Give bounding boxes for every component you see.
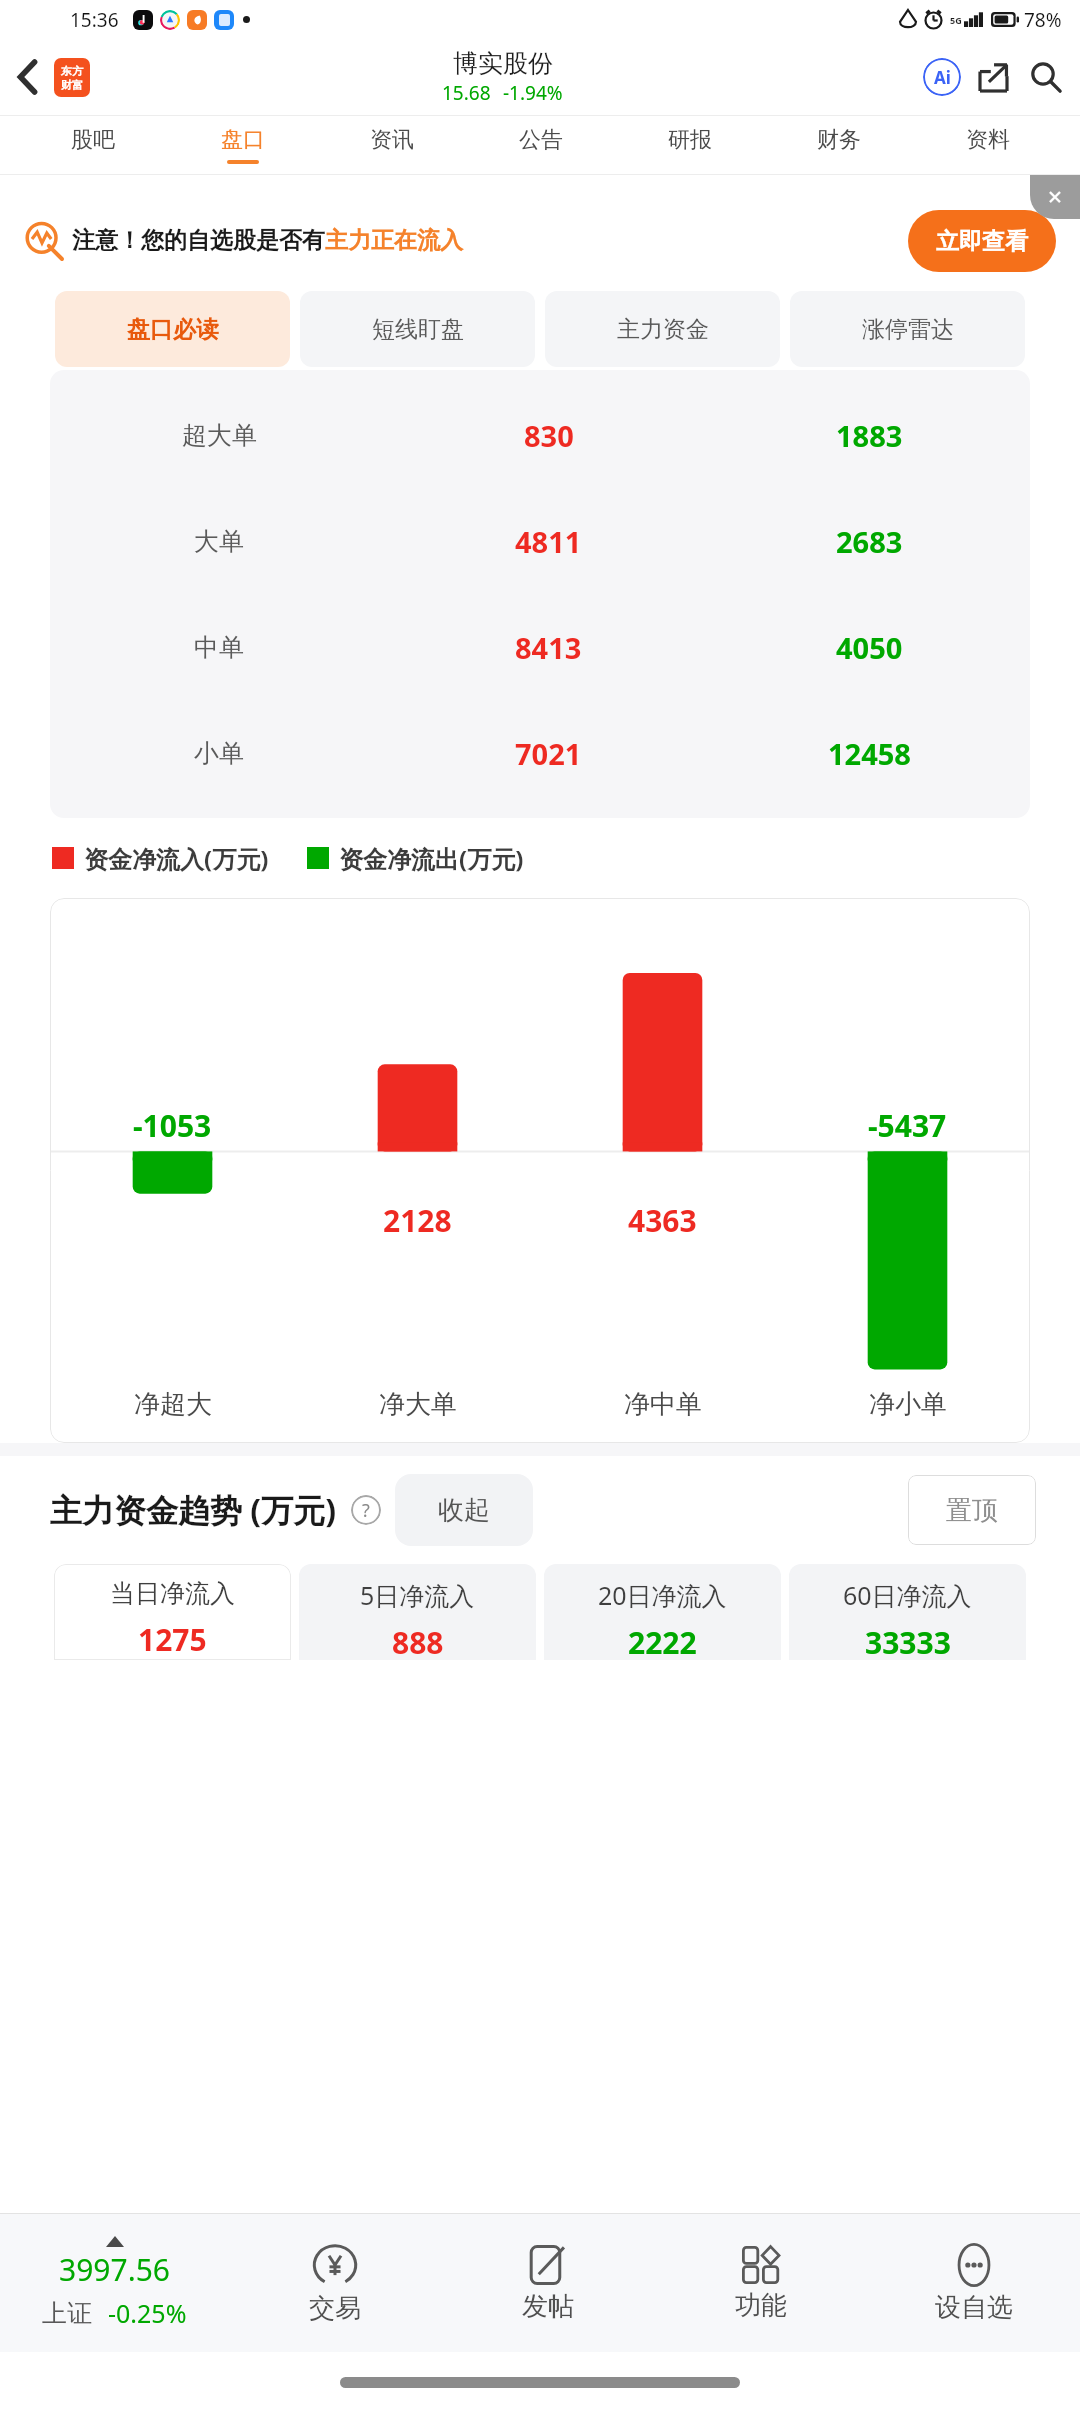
button[interactable]: 涨停雷达	[790, 291, 1025, 367]
staticText: ✕	[1047, 186, 1063, 208]
staticText: 注意！您的自选股是否有	[72, 226, 325, 255]
button[interactable]: 公告	[466, 116, 615, 174]
staticText: 2222	[628, 1622, 697, 1660]
staticText: 涨停雷达	[862, 315, 954, 344]
staticText: 收起	[438, 1494, 490, 1527]
staticText: 1275	[138, 1619, 207, 1660]
staticText: -5437	[868, 1105, 947, 1146]
staticText: -1.94%	[503, 80, 563, 106]
staticText: 股吧	[71, 126, 115, 154]
button[interactable]: 研报	[615, 116, 764, 174]
staticText: 33333	[865, 1622, 951, 1660]
staticText: ?	[362, 1498, 370, 1523]
staticText: 2128	[383, 1200, 452, 1241]
button[interactable]: 注意！您的自选股是否有	[24, 193, 1056, 288]
staticText: 资讯	[370, 126, 414, 154]
staticText: 置顶	[946, 1494, 998, 1527]
button[interactable]: Back	[0, 39, 54, 115]
staticText: 净大单	[379, 1388, 457, 1421]
button[interactable]: Help	[349, 1493, 383, 1527]
button[interactable]: 功能	[654, 2214, 867, 2352]
staticText: 4050	[836, 628, 903, 667]
staticText: 15:36	[70, 7, 119, 33]
staticText: Ai	[934, 66, 951, 89]
staticText: 盘口必读	[127, 315, 219, 344]
staticText: 大单	[194, 526, 244, 557]
button[interactable]: 20日净流入	[544, 1564, 781, 1660]
staticText: 财富	[61, 78, 83, 92]
button[interactable]: Close	[1030, 175, 1080, 219]
staticText: 主力资金趋势 (万元)	[50, 1488, 337, 1532]
button[interactable]: 盘口必读	[55, 291, 290, 367]
button[interactable]: 置顶	[908, 1475, 1036, 1545]
button[interactable]: 盘口	[168, 116, 317, 174]
staticText: 功能	[735, 2289, 787, 2322]
button[interactable]: 3997.56	[0, 2214, 229, 2352]
staticText: -0.25%	[108, 2296, 187, 2330]
staticText: 净超大	[134, 1388, 212, 1421]
staticText: 净小单	[869, 1388, 947, 1421]
button[interactable]: 收起	[395, 1474, 533, 1546]
staticText: 60日净流入	[843, 1578, 972, 1612]
button[interactable]: AI assistant	[916, 51, 968, 103]
staticText: 中单	[194, 632, 244, 663]
staticText: 小单	[194, 738, 244, 769]
staticText: 20日净流入	[598, 1578, 727, 1612]
staticText: 发帖	[522, 2290, 574, 2323]
button[interactable]: 主力资金	[545, 291, 780, 367]
button[interactable]: 5日净流入	[299, 1564, 536, 1660]
button[interactable]: 资讯	[317, 116, 466, 174]
staticText: 3997.56	[59, 2249, 170, 2290]
staticText: 4811	[515, 522, 582, 561]
button[interactable]: 短线盯盘	[300, 291, 535, 367]
button[interactable]: 交易	[229, 2214, 441, 2352]
staticText: 短线盯盘	[372, 315, 464, 344]
staticText: 立即查看	[936, 227, 1028, 256]
button[interactable]: 设自选	[867, 2214, 1080, 2352]
staticText: 7021	[515, 734, 582, 773]
staticText: 资金净流出(万元)	[339, 842, 524, 875]
button[interactable]: 60日净流入	[789, 1564, 1026, 1660]
staticText: 研报	[668, 126, 712, 154]
staticText: 2683	[836, 522, 903, 561]
staticText: 上证	[42, 2298, 92, 2329]
button[interactable]: East Money	[54, 58, 90, 97]
staticText: 888	[392, 1622, 444, 1660]
button[interactable]: 资料	[913, 116, 1062, 174]
button[interactable]: 立即查看	[908, 210, 1056, 272]
staticText: 1883	[836, 416, 903, 455]
button[interactable]: 股吧	[18, 116, 168, 174]
staticText: 12458	[828, 734, 911, 773]
staticText: 盘口	[221, 126, 265, 154]
staticText: 主力资金	[617, 315, 709, 344]
staticText: 财务	[817, 126, 861, 154]
button[interactable]: Share	[968, 52, 1018, 102]
staticText: 8413	[515, 628, 582, 667]
staticText: 15.68	[442, 80, 491, 106]
staticText: 博实股份	[453, 48, 553, 79]
staticText: 5G	[950, 14, 962, 26]
staticText: 资料	[966, 126, 1010, 154]
button[interactable]: 发帖	[441, 2214, 654, 2352]
staticText: 主力正在流入	[325, 226, 463, 255]
staticText: 4363	[628, 1200, 697, 1241]
staticText: -1053	[133, 1105, 212, 1146]
staticText: 5日净流入	[360, 1578, 475, 1612]
staticText: 交易	[309, 2292, 361, 2325]
staticText: 超大单	[182, 420, 257, 451]
staticText: 净中单	[624, 1388, 702, 1421]
staticText: 资金净流入(万元)	[84, 842, 269, 875]
staticText: 东方	[61, 64, 83, 78]
button[interactable]: 财务	[764, 116, 913, 174]
staticText: 78%	[1024, 7, 1062, 33]
button[interactable]: Search	[1018, 49, 1074, 105]
button[interactable]: 当日净流入	[54, 1564, 291, 1660]
staticText: 当日净流入	[110, 1578, 235, 1609]
staticText: 公告	[519, 126, 563, 154]
staticText: 设自选	[935, 2291, 1013, 2324]
staticText: 830	[524, 416, 574, 455]
